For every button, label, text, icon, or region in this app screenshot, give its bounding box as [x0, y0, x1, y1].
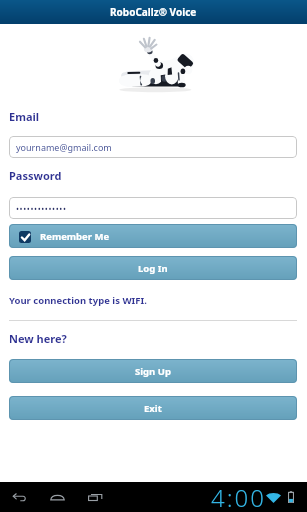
- staticText: Email: [9, 109, 40, 124]
- button[interactable]: Remember Me: [9, 224, 297, 248]
- button[interactable]: Log In: [9, 256, 297, 280]
- staticText: New here?: [9, 331, 67, 346]
- staticText: Exit: [144, 402, 162, 415]
- staticText: Remember Me: [40, 230, 110, 243]
- button[interactable]: yourname@gmail.com: [9, 136, 297, 158]
- staticText: Log In: [138, 262, 168, 275]
- staticText: Sign Up: [135, 365, 171, 378]
- button[interactable]: Recent apps: [80, 482, 110, 512]
- button[interactable]: ••••••••••••••: [9, 197, 297, 219]
- staticText: 4:00: [211, 481, 266, 511]
- button[interactable]: Back: [4, 482, 34, 512]
- staticText: Your connection type is WIFI.: [9, 294, 147, 307]
- staticText: yourname@gmail.com: [16, 141, 112, 153]
- staticText: Password: [9, 168, 62, 183]
- staticText: ••••••••••••••: [16, 203, 67, 214]
- button[interactable]: Exit: [9, 396, 297, 420]
- button[interactable]: Sign Up: [9, 359, 297, 383]
- button[interactable]: Home: [42, 482, 72, 512]
- staticText: RoboCallz® Voice: [110, 5, 197, 19]
